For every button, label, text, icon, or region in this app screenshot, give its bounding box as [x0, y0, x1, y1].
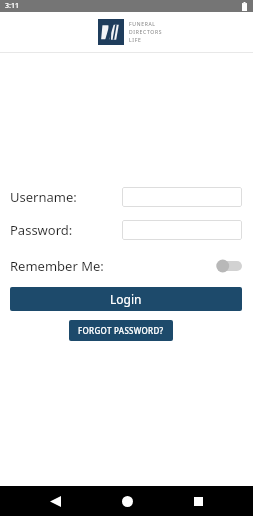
button[interactable]: Password:: [122, 220, 242, 240]
staticText: 3:11: [5, 1, 19, 11]
button[interactable]: Username:: [122, 187, 242, 207]
staticText: FUNERAL: [129, 21, 156, 28]
button[interactable]: Recent apps: [181, 486, 215, 516]
staticText: Remember Me:: [10, 257, 104, 275]
button[interactable]: Back: [38, 486, 72, 516]
button[interactable]: FORGOT PASSWORD?: [69, 320, 173, 341]
staticText: Password:: [10, 221, 73, 239]
staticText: Login: [110, 291, 142, 307]
staticText: LIFE: [129, 37, 142, 44]
button[interactable]: Remember Me:: [10, 257, 242, 275]
button[interactable]: Remember Me toggle: [216, 259, 242, 273]
staticText: DIRECTORS: [129, 29, 163, 36]
button[interactable]: Home: [110, 486, 144, 516]
staticText: Username:: [10, 188, 77, 206]
button[interactable]: Login: [10, 287, 242, 311]
staticText: FORGOT PASSWORD?: [78, 325, 164, 336]
